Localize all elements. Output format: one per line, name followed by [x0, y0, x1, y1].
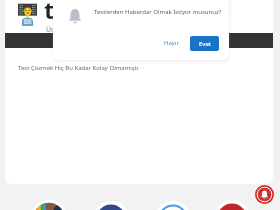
- button[interactable]: Evet: [190, 36, 219, 51]
- staticText: Evet: [199, 40, 211, 48]
- staticText: Üc: [46, 25, 55, 35]
- button[interactable]: Browser tab 4: [214, 200, 250, 210]
- button[interactable]: Browser tab 3: [155, 201, 191, 210]
- staticText: Test Çözmek Hiç Bu Kadar Kolay Olmamıştı: [18, 64, 139, 72]
- staticText: Testlerden Haberdar Olmak İstiyor musunu…: [94, 8, 222, 16]
- button[interactable]: Notifications: [255, 185, 274, 204]
- button[interactable]: Hayır: [159, 36, 184, 50]
- staticText: t: [44, 0, 55, 26]
- staticText: Hayır: [164, 39, 179, 47]
- button[interactable]: Browser tab 1: [31, 200, 67, 210]
- button[interactable]: Browser tab 2: [93, 201, 129, 210]
